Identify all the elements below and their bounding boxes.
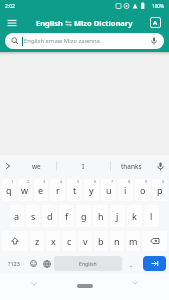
button[interactable]: o — [135, 179, 150, 201]
button[interactable]: . — [123, 253, 139, 274]
button[interactable]: A — [150, 17, 161, 28]
staticText: g — [81, 210, 87, 222]
button[interactable]: v — [78, 231, 92, 251]
button[interactable]: b — [94, 231, 108, 251]
staticText: s — [31, 210, 36, 222]
staticText: z — [35, 235, 40, 247]
staticText: q — [6, 184, 12, 196]
staticText: . — [130, 258, 133, 269]
button[interactable]: ?123 — [2, 254, 26, 273]
staticText: i — [124, 184, 127, 196]
button[interactable] — [40, 253, 53, 274]
staticText: e — [38, 184, 44, 196]
button[interactable]: i — [118, 179, 133, 201]
staticText: j — [116, 210, 119, 222]
button[interactable]: z — [30, 231, 44, 251]
staticText: 9 — [145, 179, 148, 184]
button[interactable]: x — [46, 231, 60, 251]
button[interactable]: a — [10, 205, 24, 227]
button[interactable] — [0, 155, 16, 177]
button[interactable]: h — [93, 205, 108, 227]
staticText: u — [106, 184, 112, 196]
staticText: f — [65, 210, 69, 222]
staticText: English — [79, 260, 97, 267]
button[interactable]: I — [57, 155, 110, 177]
button[interactable]: c — [62, 231, 76, 251]
staticText: ?123 — [8, 260, 20, 267]
staticText: t — [73, 184, 77, 196]
button[interactable]: u — [101, 179, 116, 201]
staticText: 3 — [43, 179, 46, 184]
staticText: 0 — [162, 179, 165, 184]
button[interactable]: g — [76, 205, 91, 227]
staticText: m — [129, 235, 138, 247]
staticText: thanks — [121, 162, 142, 171]
staticText: a — [14, 210, 20, 222]
button[interactable]: l — [144, 205, 159, 227]
button[interactable]: f — [59, 205, 74, 227]
staticText: English — [36, 18, 63, 28]
staticText: 8 — [128, 179, 131, 184]
button[interactable]: j — [110, 205, 125, 227]
button[interactable] — [142, 231, 167, 251]
button[interactable] — [27, 253, 40, 274]
staticText: b — [98, 235, 104, 247]
button[interactable] — [77, 284, 93, 288]
staticText: c — [67, 235, 72, 247]
button[interactable] — [6, 17, 18, 29]
button[interactable]: thanks — [111, 155, 151, 177]
button[interactable]: t — [67, 179, 82, 201]
button[interactable]: we — [16, 155, 56, 177]
staticText: p — [157, 184, 163, 196]
button[interactable]: n — [110, 231, 124, 251]
button[interactable]: r — [50, 179, 65, 201]
button[interactable]: English — [54, 256, 122, 271]
staticText: 1 — [11, 179, 14, 184]
staticText: 100% — [152, 3, 164, 9]
staticText: 4 — [60, 179, 63, 184]
staticText: k — [132, 210, 137, 222]
staticText: 7 — [111, 179, 114, 184]
button[interactable]: y — [84, 179, 99, 201]
button[interactable]: e — [34, 179, 48, 201]
staticText: v — [83, 235, 88, 247]
staticText: Mizo Dictionary — [74, 18, 133, 28]
staticText: h — [98, 210, 104, 222]
staticText: 2:02 — [5, 3, 15, 10]
staticText: English emaw Mizo zawnna — [24, 37, 100, 45]
staticText: A — [153, 19, 158, 27]
button[interactable]: q — [2, 179, 16, 201]
staticText: 5 — [77, 179, 80, 184]
staticText: x — [51, 235, 56, 247]
staticText: we — [32, 162, 41, 171]
staticText: w — [21, 184, 29, 196]
staticText: n — [114, 235, 120, 247]
button[interactable]: s — [26, 205, 40, 227]
button[interactable]: k — [127, 205, 142, 227]
staticText: 6 — [94, 179, 97, 184]
button[interactable] — [143, 256, 166, 271]
staticText: y — [89, 184, 94, 196]
button[interactable]: w — [18, 179, 32, 201]
button[interactable]: d — [42, 205, 57, 227]
button[interactable]: p — [152, 179, 167, 201]
button[interactable]: m — [126, 231, 140, 251]
staticText: o — [140, 184, 146, 196]
staticText: l — [150, 210, 153, 222]
button[interactable]: English emaw Mizo zawnna — [5, 33, 164, 49]
button[interactable] — [2, 231, 28, 251]
button[interactable] — [151, 155, 169, 177]
staticText: 2 — [27, 179, 30, 184]
staticText: r — [56, 184, 60, 196]
staticText: I — [82, 162, 85, 171]
staticText: d — [47, 210, 53, 222]
